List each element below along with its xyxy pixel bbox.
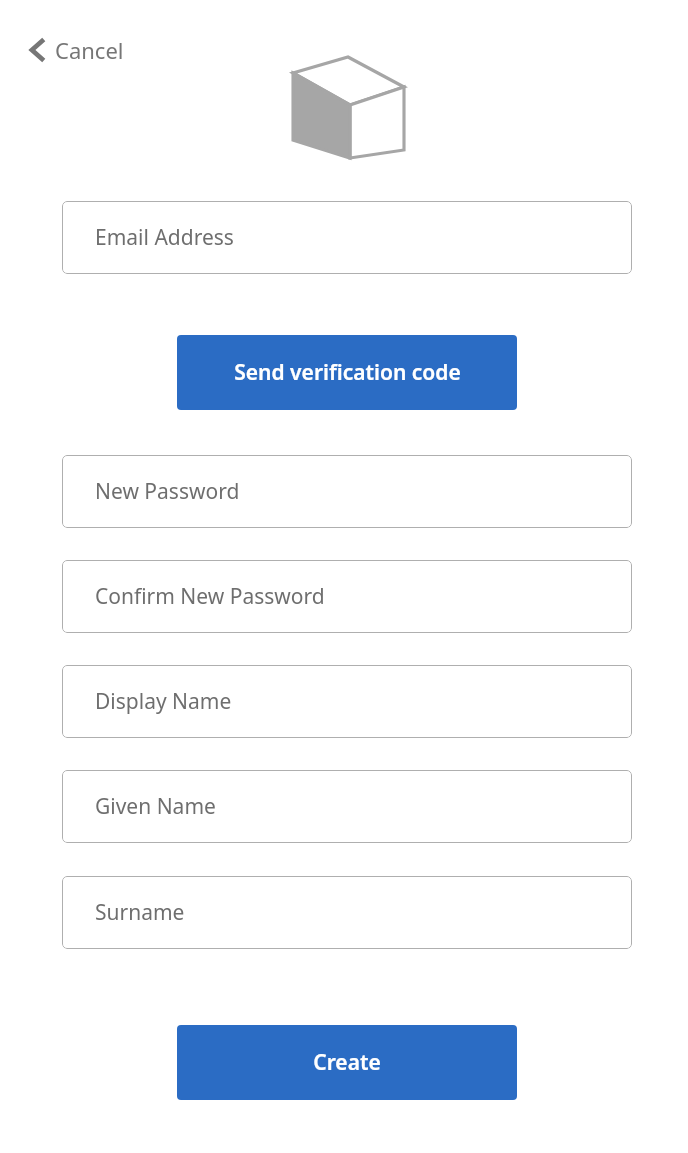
staticText: Confirm New Password [95, 582, 325, 611]
staticText: Create [313, 1048, 381, 1077]
staticText: Cancel [55, 35, 124, 65]
button[interactable]: Back [18, 28, 148, 72]
staticText: Display Name [95, 687, 232, 716]
button[interactable]: New Password [62, 455, 632, 528]
button[interactable]: Email Address [62, 201, 632, 274]
button[interactable]: Given Name [62, 770, 632, 843]
other: Back [29, 38, 47, 62]
staticText: Email Address [95, 223, 234, 252]
staticText: New Password [95, 477, 240, 506]
staticText: Given Name [95, 792, 216, 821]
button[interactable]: Surname [62, 876, 632, 949]
button[interactable]: Display Name [62, 665, 632, 738]
button[interactable]: Confirm New Password [62, 560, 632, 633]
staticText: Surname [95, 898, 185, 927]
button[interactable]: Send verification code [177, 335, 517, 410]
staticText: Send verification code [234, 358, 461, 387]
button[interactable]: Create [177, 1025, 517, 1100]
other: App logo [292, 57, 404, 158]
